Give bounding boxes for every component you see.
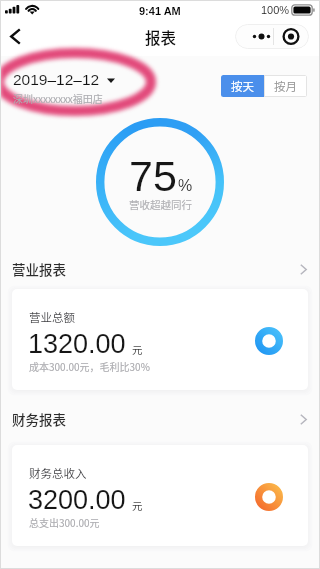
staticText: 按天: [231, 78, 254, 95]
staticText: 成本300.00元，毛利比30%: [29, 359, 150, 373]
staticText: 财务总收入: [29, 465, 87, 482]
staticText: 总支出300.00元: [29, 515, 100, 529]
staticText: 75: [129, 152, 177, 200]
staticText: 元: [132, 498, 143, 513]
button[interactable]: 营业报表: [0, 255, 320, 283]
staticText: 营业报表: [12, 259, 66, 279]
staticText: 按月: [274, 78, 297, 95]
staticText: 报表: [145, 26, 177, 48]
button[interactable]: 菜单: [235, 24, 309, 49]
button[interactable]: 返回: [0, 20, 31, 52]
button[interactable]: 财务报表: [0, 405, 320, 433]
staticText: 营收超越同行: [129, 197, 192, 212]
staticText: 财务报表: [12, 409, 66, 429]
staticText: 深圳xxxxxxxx福田店: [13, 91, 103, 105]
staticText: 1320.00: [28, 329, 126, 359]
staticText: 营业总额: [29, 309, 75, 326]
button[interactable]: 按天: [221, 75, 264, 97]
staticText: %: [178, 177, 193, 195]
staticText: 元: [132, 342, 143, 357]
staticText: 100%: [261, 4, 290, 16]
button[interactable]: 营业总额: [12, 289, 308, 390]
button[interactable]: 按月: [264, 75, 307, 97]
staticText: 2019–12–12: [13, 71, 100, 88]
button[interactable]: 2019–12–12: [13, 71, 115, 105]
staticText: 3200.00: [28, 485, 126, 515]
staticText: 9:41 AM: [139, 5, 181, 17]
button[interactable]: 财务总收入: [12, 445, 308, 546]
